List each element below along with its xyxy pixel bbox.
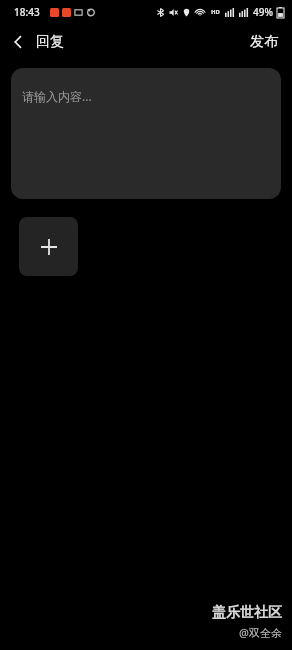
button[interactable]: 发布 (236, 25, 292, 59)
staticText: 发布 (250, 33, 278, 51)
staticText: 18:43 (14, 5, 40, 19)
button[interactable]: 请输入内容... (11, 68, 281, 199)
button[interactable]: Add image (19, 217, 78, 276)
staticText: 49% (253, 5, 273, 19)
staticText: @双全余 (239, 625, 282, 640)
staticText: 回复 (36, 33, 64, 51)
staticText: 请输入内容... (22, 88, 92, 104)
button[interactable]: Back (0, 24, 36, 60)
staticText: 盖乐世社区 (212, 604, 282, 622)
staticText: HD (211, 8, 220, 16)
